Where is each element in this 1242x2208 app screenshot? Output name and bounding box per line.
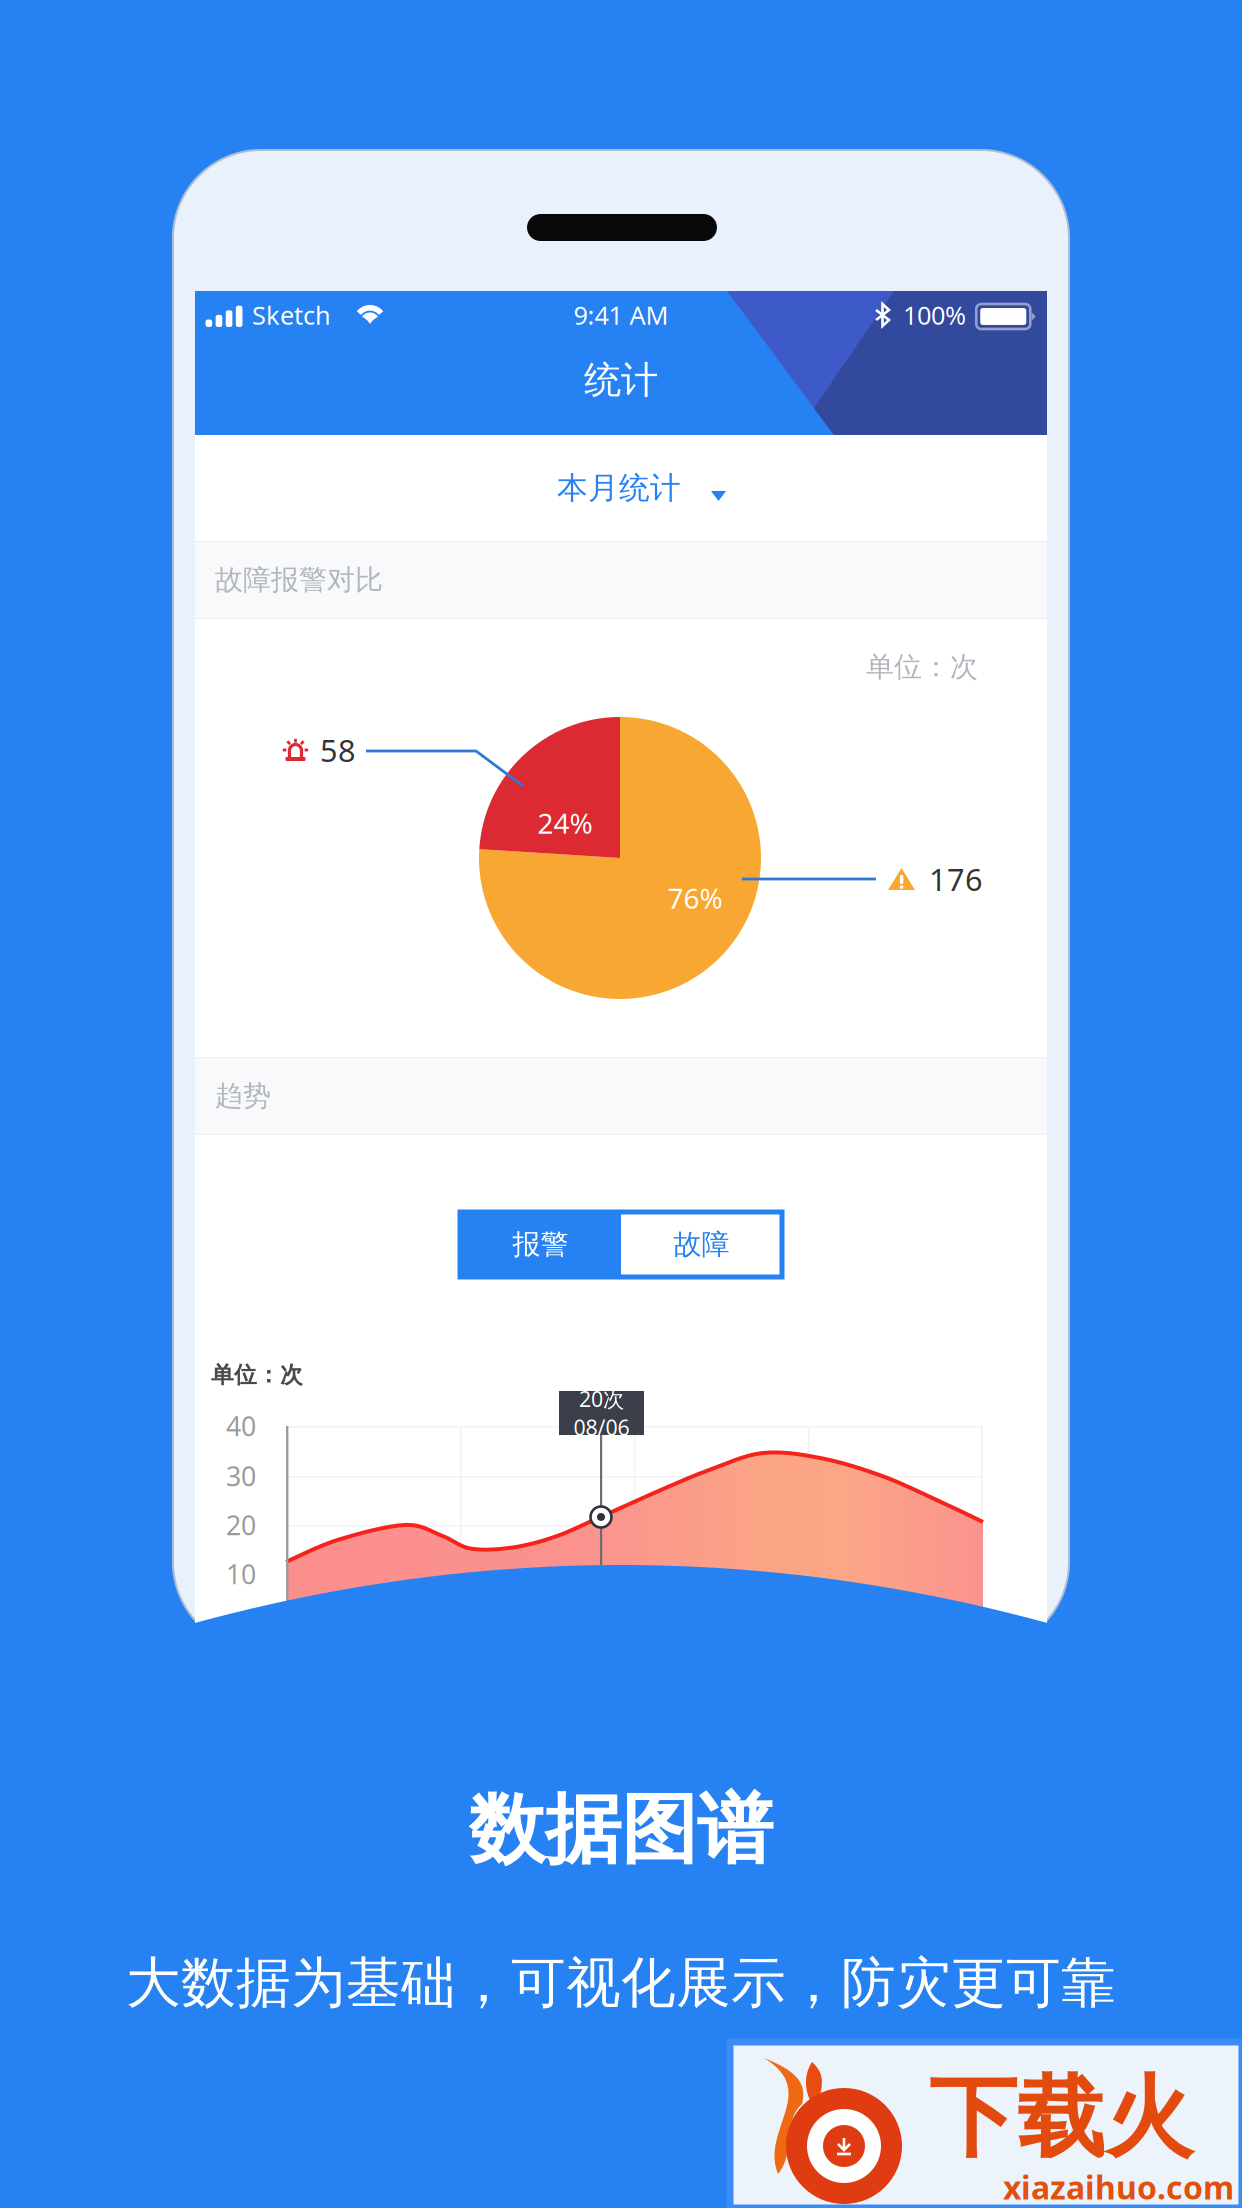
- staticText: 176: [929, 859, 983, 899]
- staticText: 9:41 AM: [573, 298, 668, 332]
- staticText: 40: [226, 1408, 256, 1444]
- staticText: 30: [226, 1458, 256, 1494]
- staticText: 故障报警对比: [215, 563, 383, 597]
- staticText: 08/06: [573, 1413, 629, 1441]
- staticText: 大数据为基础，可视化展示，防灾更可靠: [126, 1949, 1116, 2016]
- staticText: 100%: [903, 298, 966, 332]
- staticText: 58: [320, 730, 356, 770]
- staticText: 报警: [512, 1227, 568, 1262]
- staticText: 24%: [537, 804, 592, 842]
- button[interactable]: 故障: [621, 1212, 782, 1277]
- staticText: 趋势: [215, 1079, 271, 1113]
- staticText: 单位：次: [866, 650, 978, 684]
- staticText: 20次: [579, 1385, 624, 1413]
- staticText: 单位：次: [211, 1361, 303, 1389]
- staticText: 下载火: [929, 2064, 1193, 2172]
- staticText: Sketch: [252, 298, 331, 332]
- staticText: 本月统计: [557, 469, 681, 507]
- staticText: 数据图谱: [469, 1783, 773, 1877]
- staticText: 10: [226, 1556, 256, 1592]
- staticText: 故障: [673, 1227, 729, 1262]
- staticText: 统计: [584, 357, 658, 403]
- staticText: 20: [226, 1507, 256, 1543]
- staticText: xiazaihuo.com: [1003, 2166, 1234, 2208]
- button[interactable]: 报警: [460, 1212, 621, 1277]
- button[interactable]: 本月统计: [195, 435, 1047, 541]
- staticText: 76%: [667, 879, 722, 917]
